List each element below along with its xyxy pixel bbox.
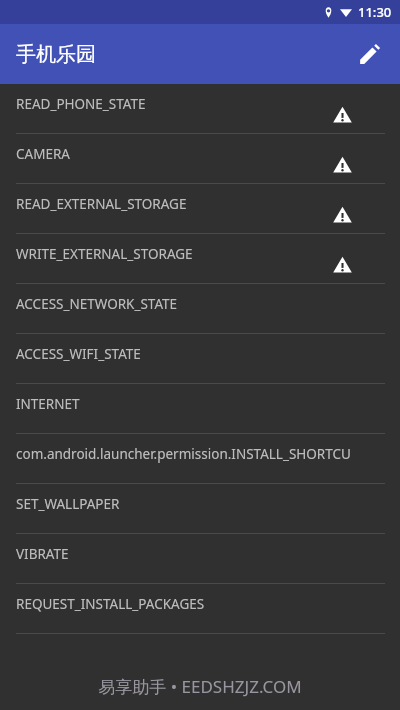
staticText: WRITE_EXTERNAL_STORAGE (16, 245, 193, 263)
button[interactable]: VIBRATE (0, 534, 400, 584)
button[interactable]: REQUEST_INSTALL_PACKAGES (0, 584, 400, 634)
staticText: INTERNET (16, 395, 80, 413)
button[interactable]: INTERNET (0, 384, 400, 434)
button[interactable]: ACCESS_NETWORK_STATE (0, 284, 400, 334)
staticText: com.android.launcher.permission.INSTALL_… (16, 445, 352, 463)
staticText: ACCESS_NETWORK_STATE (16, 295, 178, 313)
button[interactable]: CAMERA (0, 134, 400, 184)
button[interactable]: SET_WALLPAPER (0, 484, 400, 534)
other: Warning (333, 255, 352, 274)
other: Warning (333, 205, 352, 224)
staticText: READ_PHONE_STATE (16, 95, 146, 113)
staticText: READ_EXTERNAL_STORAGE (16, 195, 187, 213)
button[interactable]: WRITE_EXTERNAL_STORAGE (0, 234, 400, 284)
button[interactable]: com.android.launcher.permission.INSTALL_… (0, 434, 400, 484)
button[interactable]: ACCESS_WIFI_STATE (0, 334, 400, 384)
staticText: VIBRATE (16, 545, 69, 563)
staticText: CAMERA (16, 145, 70, 163)
staticText: 手机乐园 (16, 42, 96, 67)
button[interactable]: READ_EXTERNAL_STORAGE (0, 184, 400, 234)
staticText: REQUEST_INSTALL_PACKAGES (16, 595, 205, 613)
button[interactable]: Edit (346, 30, 394, 78)
other: Warning (333, 155, 352, 174)
staticText: 11:30 (358, 3, 392, 21)
staticText: 易享助手 • EEDSHZJZ.COM (0, 675, 400, 698)
staticText: SET_WALLPAPER (16, 495, 120, 513)
button[interactable]: READ_PHONE_STATE (0, 84, 400, 134)
staticText: ACCESS_WIFI_STATE (16, 345, 141, 363)
other: Warning (333, 105, 352, 124)
